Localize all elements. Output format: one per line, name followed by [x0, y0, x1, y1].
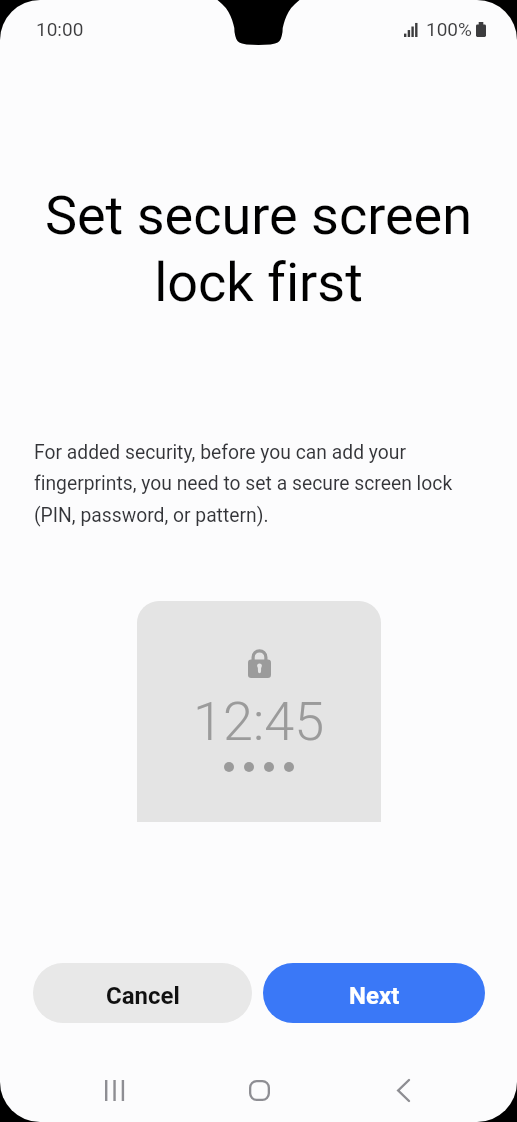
- button[interactable]: Back: [363, 1058, 443, 1122]
- button[interactable]: Next: [263, 963, 485, 1023]
- staticText: For added security, before you can add y…: [34, 441, 464, 527]
- staticText: Set secure screen lock first: [0, 184, 517, 314]
- button[interactable]: Recent apps: [75, 1058, 155, 1122]
- staticText: 10:00: [36, 18, 84, 40]
- button[interactable]: Home: [219, 1058, 299, 1122]
- staticText: 12:45: [193, 690, 325, 753]
- staticText: Cancel: [106, 982, 180, 1010]
- staticText: 100%: [426, 18, 472, 40]
- button[interactable]: Cancel: [33, 963, 252, 1023]
- staticText: Next: [349, 982, 400, 1010]
